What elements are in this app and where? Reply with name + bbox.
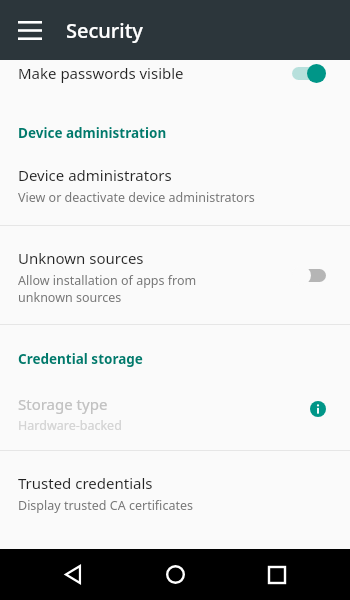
button[interactable]: Home — [146, 549, 204, 600]
staticText: Hardware-backed — [18, 417, 122, 434]
staticText: Storage type — [18, 394, 108, 414]
staticText: Make passwords visible — [18, 63, 184, 83]
button[interactable]: Trusted credentials — [0, 451, 350, 533]
staticText: Trusted credentials — [18, 473, 153, 493]
button[interactable]: Recent apps — [248, 549, 306, 600]
staticText: View or deactivate device administrators — [18, 189, 255, 206]
staticText: Allow installation of apps from unknown … — [18, 272, 197, 306]
button[interactable]: Open navigation menu — [8, 8, 52, 52]
button[interactable]: Unknown sources — [0, 226, 350, 324]
staticText: Device administrators — [18, 165, 172, 185]
staticText: Device administration — [18, 124, 350, 142]
button[interactable]: Make passwords visible — [0, 60, 350, 86]
button[interactable]: Back — [44, 549, 102, 600]
staticText: Security — [66, 17, 143, 44]
staticText: Display trusted CA certificates — [18, 497, 193, 514]
button[interactable]: Device administrators — [0, 142, 350, 225]
staticText: Credential storage — [18, 350, 350, 368]
staticText: Unknown sources — [18, 248, 144, 268]
button[interactable]: Information about storage type — [304, 395, 332, 423]
